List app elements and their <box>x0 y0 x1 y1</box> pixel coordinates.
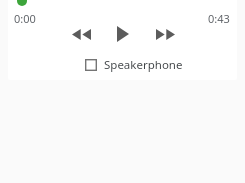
staticText: 0:43 <box>208 11 230 26</box>
button[interactable]: Fast forward <box>150 21 180 47</box>
button[interactable]: Rewind <box>66 21 96 47</box>
staticText: 0:00 <box>14 11 36 26</box>
button[interactable]: Speakerphone <box>82 53 186 77</box>
staticText: Speakerphone <box>104 57 183 73</box>
button[interactable]: Play <box>108 21 138 47</box>
